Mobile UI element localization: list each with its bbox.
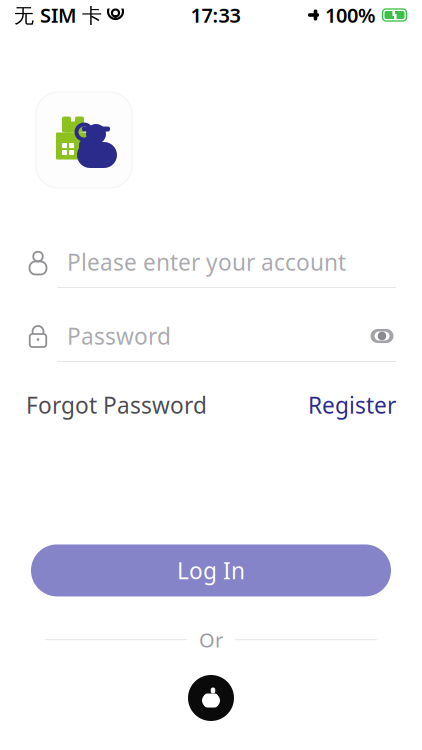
button[interactable]: Show password	[368, 324, 396, 348]
staticText: Please enter your account	[67, 247, 346, 277]
button[interactable]: Register	[308, 390, 396, 420]
staticText: 100%	[325, 2, 376, 28]
staticText: Log In	[177, 555, 245, 585]
staticText: Forgot Password	[26, 390, 207, 420]
button[interactable]: Log In	[31, 544, 391, 596]
staticText: Register	[308, 390, 396, 420]
staticText: Or	[199, 626, 223, 653]
staticText: 无 SIM 卡	[14, 2, 102, 28]
staticText: Password	[67, 321, 171, 351]
button[interactable]: Forgot Password	[26, 390, 207, 420]
button[interactable]: Sign in with Apple	[188, 675, 234, 721]
staticText: 17:33	[190, 2, 240, 28]
